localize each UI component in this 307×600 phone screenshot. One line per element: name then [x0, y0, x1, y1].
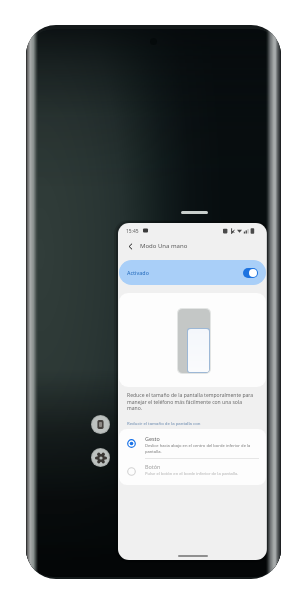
button[interactable]: Back — [123, 239, 138, 254]
staticText: Activado — [127, 269, 149, 276]
button[interactable]: Settings — [92, 449, 109, 466]
button[interactable]: Gesto — [119, 429, 266, 458]
staticText: Gesto — [145, 435, 160, 442]
staticText: 15:45 — [126, 228, 139, 235]
button[interactable]: Botón — [119, 459, 266, 485]
staticText: Botón — [145, 463, 161, 470]
staticText: Reducir el tamaño de la pantalla con — [127, 420, 201, 426]
staticText: Pulse el botón en el borde inferior de l… — [145, 471, 257, 477]
staticText: Modo Una mano — [140, 242, 188, 250]
button[interactable]: Activado — [119, 260, 266, 285]
button[interactable]: SmartThings — [92, 416, 109, 433]
staticText: Deslice hacia abajo en el centro del bor… — [145, 443, 257, 454]
staticText: Reduce el tamaño de la pantalla temporal… — [127, 392, 254, 412]
